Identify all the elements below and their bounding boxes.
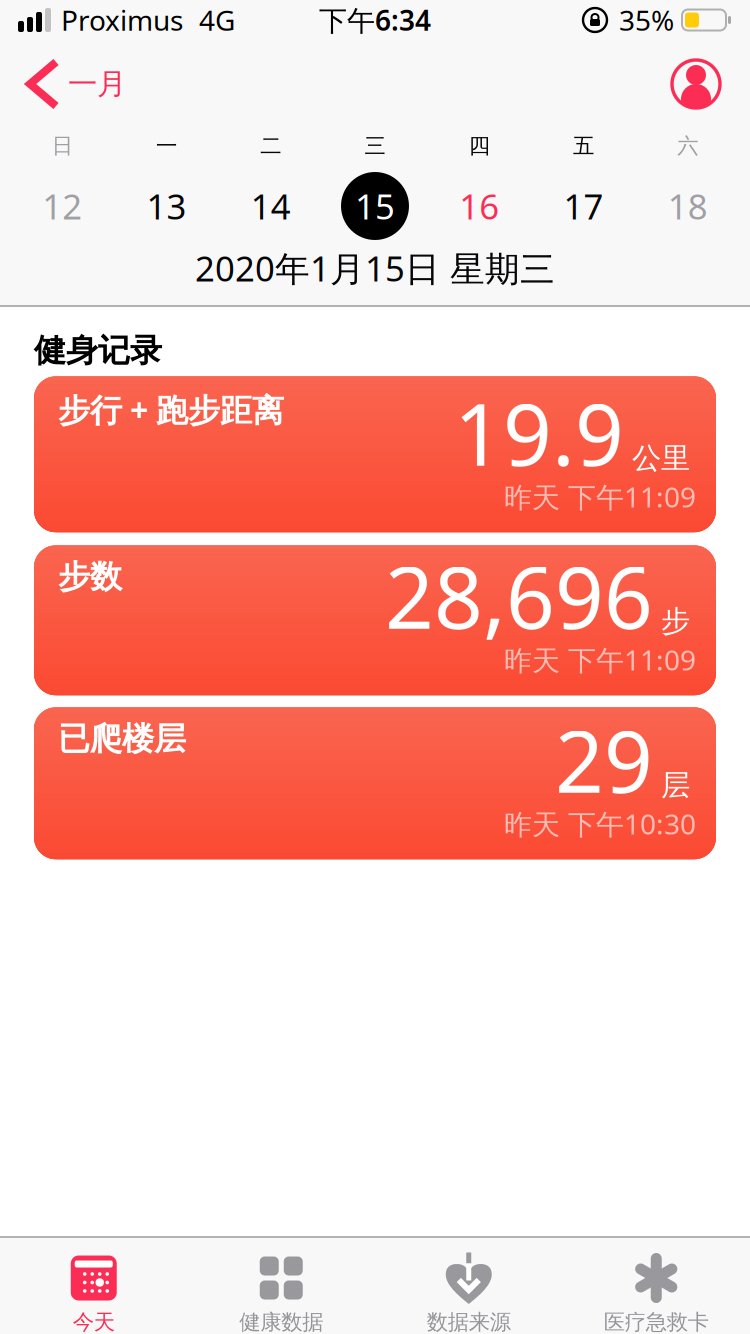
staticText: 昨天 下午11:09 — [504, 641, 696, 678]
staticText: 4G — [199, 1, 235, 39]
button[interactable]: 16 — [427, 164, 531, 248]
staticText: 健身记录 — [34, 331, 162, 370]
staticText: 19.9 — [454, 376, 624, 489]
staticText: 17 — [564, 183, 604, 229]
staticText: 15 — [355, 183, 395, 229]
staticText: 16 — [459, 183, 499, 229]
staticText: 已爬楼层 — [58, 719, 186, 759]
button[interactable]: 健康数据 — [187, 1238, 375, 1334]
staticText: 35% — [619, 1, 674, 39]
staticText: 步 — [661, 603, 690, 639]
staticText: 一月 — [68, 66, 126, 102]
staticText: 18 — [668, 183, 708, 229]
staticText: 六 — [677, 133, 698, 159]
button[interactable]: 17 — [531, 164, 636, 248]
staticText: 步数 — [58, 557, 122, 597]
button[interactable]: 14 — [219, 164, 323, 248]
staticText: 13 — [146, 183, 186, 229]
staticText: 昨天 下午11:09 — [504, 478, 696, 515]
staticText: 29 — [555, 703, 653, 816]
button[interactable]: 今天 — [0, 1238, 187, 1334]
staticText: 日 — [52, 133, 73, 159]
button[interactable]: 已爬楼层 — [34, 707, 716, 859]
button[interactable]: 13 — [114, 164, 219, 248]
staticText: 四 — [469, 133, 490, 159]
staticText: 步行 + 跑步距离 — [58, 388, 284, 431]
staticText: Proximus — [61, 1, 183, 39]
staticText: 公里 — [632, 440, 690, 476]
staticText: 一 — [156, 133, 177, 159]
staticText: 五 — [573, 133, 594, 159]
staticText: 健康数据 — [239, 1309, 323, 1334]
button[interactable]: 步数 — [34, 545, 716, 695]
button[interactable]: 健康资料 — [672, 60, 750, 108]
staticText: 医疗急救卡 — [604, 1309, 709, 1334]
staticText: 昨天 下午10:30 — [504, 805, 696, 842]
button[interactable]: 步行 + 跑步距离 — [34, 376, 716, 532]
button[interactable]: 12 — [10, 164, 114, 248]
staticText: 层 — [661, 767, 690, 803]
button[interactable]: 数据来源 — [375, 1238, 562, 1334]
staticText: 三 — [364, 133, 385, 159]
button[interactable]: 一月 — [0, 62, 126, 106]
staticText: 14 — [251, 183, 291, 229]
staticText: 12 — [42, 183, 82, 229]
staticText: 二 — [260, 133, 281, 159]
staticText: 今天 — [73, 1309, 115, 1334]
staticText: 2020年1月15日 星期三 — [195, 245, 555, 291]
staticText: 28,696 — [385, 539, 653, 652]
staticText: 数据来源 — [427, 1309, 511, 1334]
staticText: 下午6:34 — [319, 1, 431, 39]
button[interactable]: 医疗急救卡 — [562, 1238, 750, 1334]
button[interactable]: 15 — [323, 164, 427, 248]
button[interactable]: 18 — [636, 164, 740, 248]
